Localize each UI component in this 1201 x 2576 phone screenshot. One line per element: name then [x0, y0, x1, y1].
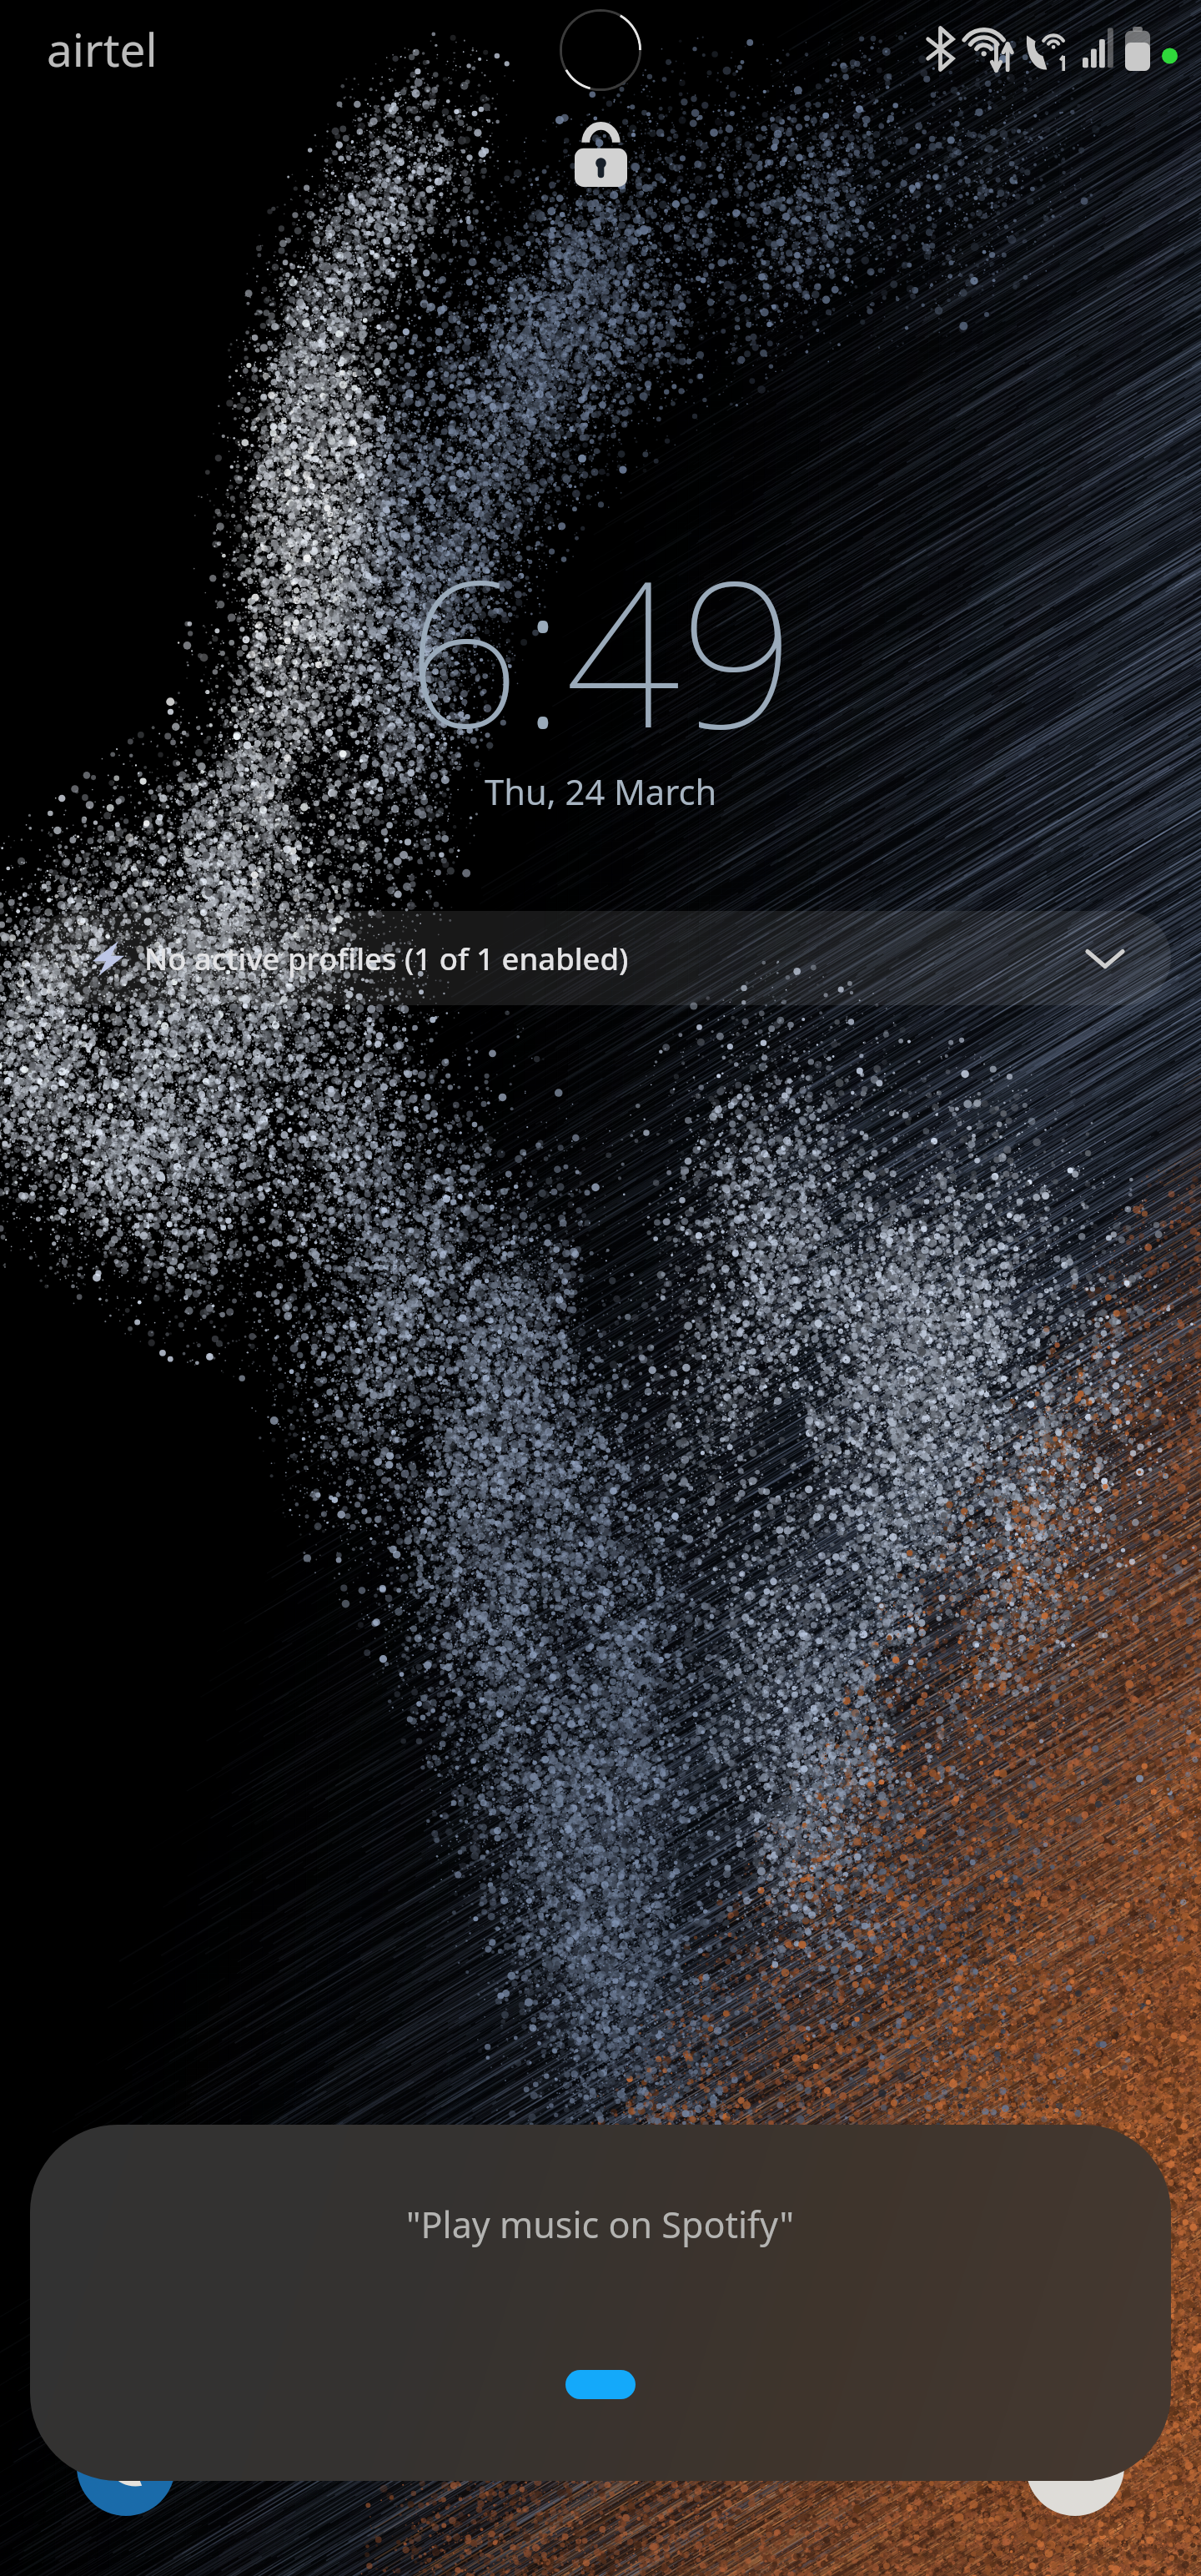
- staticText: airtel: [47, 18, 158, 80]
- other: Assistant listening: [565, 2370, 636, 2399]
- staticText: "Play music on Spotify": [406, 2200, 795, 2249]
- staticText: No active profiles (1 of 1 enabled): [144, 938, 629, 979]
- button[interactable]: Camera: [1026, 2418, 1124, 2516]
- button[interactable]: Phone: [77, 2418, 175, 2516]
- button[interactable]: Locked, tap to unlock: [575, 123, 627, 187]
- button[interactable]: Expand notification: [1070, 923, 1140, 994]
- staticText: Thu, 24 March: [485, 767, 717, 815]
- staticText: 6:49: [405, 511, 796, 787]
- button[interactable]: "Play music on Spotify": [30, 2125, 1171, 2481]
- button[interactable]: No active profiles (1 of 1 enabled): [30, 911, 1171, 1005]
